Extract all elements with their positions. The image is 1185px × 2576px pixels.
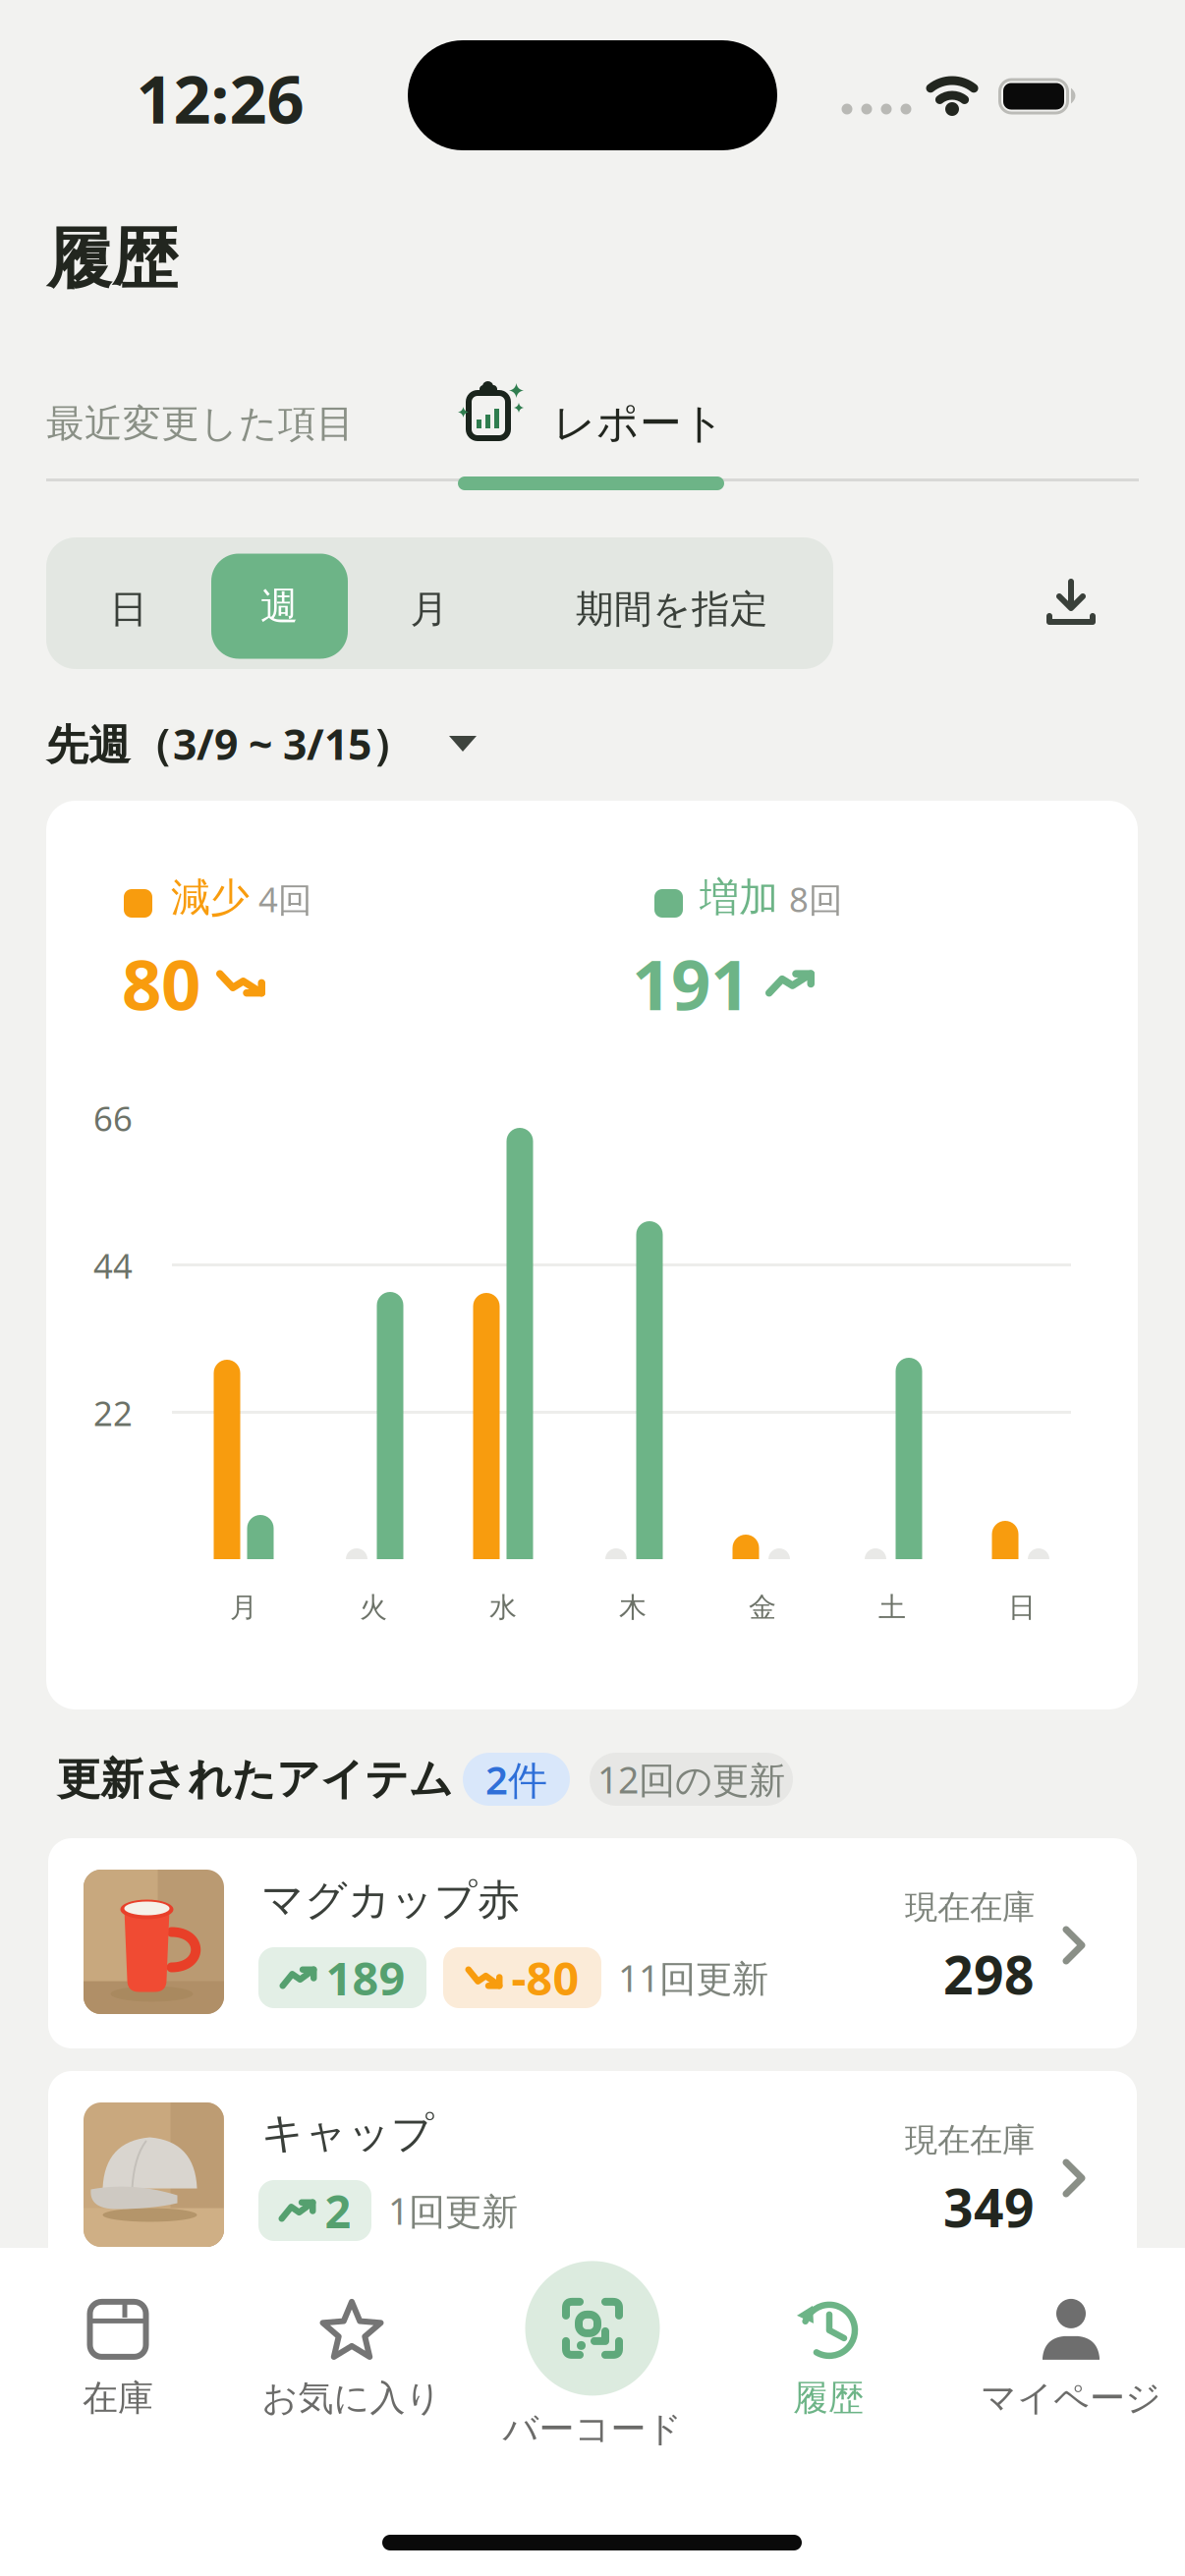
staticText: -80: [511, 1947, 579, 2008]
staticText: 8回: [789, 876, 843, 922]
staticText: キャップ: [261, 2107, 434, 2159]
button[interactable]: マイページ: [955, 2285, 1185, 2433]
button[interactable]: マグカップ赤: [48, 1838, 1137, 2048]
button[interactable]: キャップ: [48, 2071, 1137, 2281]
staticText: 週: [260, 583, 299, 630]
staticText: 2件: [485, 1753, 547, 1805]
staticText: 22: [93, 1390, 133, 1435]
button[interactable]: 期間を指定: [511, 537, 833, 669]
staticText: お気に入り: [262, 2376, 442, 2420]
staticText: 189: [326, 1947, 405, 2008]
button[interactable]: 週: [211, 551, 348, 656]
staticText: 12:26: [136, 55, 304, 142]
staticText: 12回の更新: [597, 1755, 785, 1804]
staticText: 66: [93, 1095, 133, 1141]
staticText: 1回更新: [388, 2186, 518, 2235]
staticText: 更新されたアイテム: [57, 1753, 453, 1806]
staticText: 2: [325, 2180, 351, 2241]
button[interactable]: 月: [348, 537, 511, 669]
staticText: バーコード: [503, 2407, 682, 2451]
staticText: レポート: [553, 398, 725, 449]
button[interactable]: お気に入り: [236, 2285, 468, 2433]
staticText: 44: [93, 1243, 133, 1288]
staticText: 349: [943, 2172, 1035, 2242]
staticText: 現在在庫: [905, 2120, 1035, 2160]
button[interactable]: 日: [46, 537, 211, 669]
staticText: 土: [878, 1591, 906, 1624]
staticText: 金: [749, 1591, 776, 1624]
staticText: 191: [632, 937, 750, 1029]
button[interactable]: 先週（3/9 ~ 3/15）: [46, 709, 477, 778]
staticText: 先週（3/9 ~ 3/15）: [46, 716, 414, 772]
button[interactable]: 履歴: [712, 2285, 944, 2433]
staticText: 80: [122, 937, 200, 1029]
staticText: 日: [1008, 1591, 1036, 1624]
staticText: 月: [410, 586, 449, 633]
button[interactable]: 在庫: [2, 2285, 234, 2433]
staticText: 在庫: [83, 2376, 153, 2420]
staticText: 4回: [258, 876, 312, 922]
button[interactable]: ダウンロード: [1022, 537, 1120, 669]
staticText: 298: [943, 1939, 1035, 2009]
staticText: 履歴: [46, 219, 178, 300]
staticText: 増加: [700, 873, 778, 922]
staticText: マグカップ赤: [261, 1875, 520, 1926]
staticText: 減少: [171, 873, 250, 922]
staticText: 水: [489, 1591, 517, 1624]
staticText: 月: [230, 1591, 257, 1624]
staticText: マイページ: [981, 2376, 1161, 2420]
button[interactable]: レポート: [458, 378, 725, 469]
staticText: 最近変更した項目: [46, 400, 355, 447]
button[interactable]: バーコード: [477, 2263, 708, 2449]
staticText: 日: [110, 586, 148, 633]
staticText: 履歴: [793, 2376, 864, 2420]
staticText: 11回更新: [618, 1953, 768, 2002]
staticText: 火: [360, 1591, 387, 1624]
button[interactable]: 最近変更した項目: [46, 378, 355, 469]
staticText: 現在在庫: [905, 1887, 1035, 1927]
staticText: 木: [619, 1591, 647, 1624]
staticText: 期間を指定: [576, 586, 768, 633]
